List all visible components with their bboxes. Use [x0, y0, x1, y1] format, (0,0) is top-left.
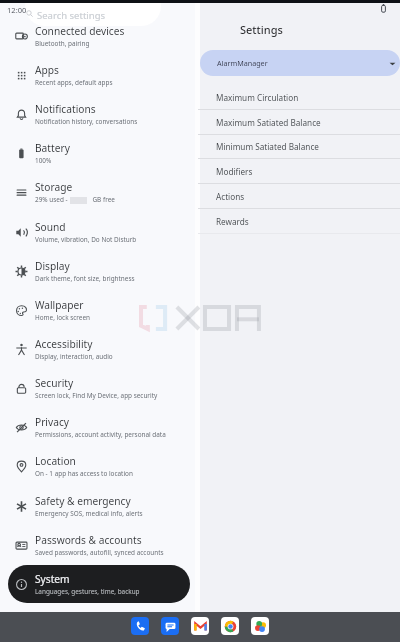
button[interactable]: Display — [8, 252, 190, 290]
staticText: Wallpaper — [35, 298, 84, 312]
button[interactable]: gmail — [191, 617, 209, 635]
staticText: Passwords & accounts — [35, 533, 142, 547]
button[interactable]: Sound — [8, 213, 190, 251]
staticText: Saved passwords, autofill, synced accoun… — [35, 548, 164, 557]
staticText: Battery — [35, 141, 70, 155]
staticText: Storage — [35, 180, 73, 194]
staticText: 29% used - GB free — [35, 195, 115, 204]
button[interactable]: Apps — [8, 56, 190, 94]
button[interactable]: Safety & emergency — [8, 487, 190, 525]
staticText: Sound — [35, 220, 66, 234]
staticText: System — [35, 572, 70, 586]
staticText: Connected devices — [35, 24, 125, 38]
staticText: 100% — [35, 156, 52, 165]
button[interactable]: Search settings — [25, 0, 161, 26]
button[interactable]: Notifications — [8, 95, 190, 133]
button[interactable]: Privacy — [8, 408, 190, 446]
staticText: Display, interaction, audio — [35, 352, 113, 361]
staticText: Apps — [35, 63, 59, 77]
staticText: 12:00 — [7, 5, 27, 15]
staticText: Modifiers — [216, 166, 253, 177]
button[interactable]: chrome — [221, 617, 239, 635]
staticText: Emergency SOS, medical info, alerts — [35, 509, 143, 518]
staticText: On - 1 app has access to location — [35, 469, 133, 478]
staticText: Languages, gestures, time, backup — [35, 587, 140, 596]
staticText: Settings — [240, 22, 283, 37]
button[interactable]: Connected devices — [8, 17, 190, 55]
button[interactable]: photos — [251, 617, 269, 635]
staticText: Screen lock, Find My Device, app securit… — [35, 391, 158, 400]
staticText: Privacy — [35, 415, 69, 429]
staticText: Location — [35, 454, 76, 468]
staticText: AlarmManager — [217, 58, 268, 68]
staticText: Notification history, conversations — [35, 117, 138, 126]
button[interactable]: Security — [8, 369, 190, 407]
button[interactable]: AlarmManager — [200, 50, 400, 76]
staticText: Notifications — [35, 102, 96, 116]
staticText: Volume, vibration, Do Not Disturb — [35, 235, 137, 244]
button[interactable]: Passwords & accounts — [8, 526, 190, 564]
staticText: Dark theme, font size, brightness — [35, 274, 135, 283]
button[interactable]: Minimum Satiated Balance — [198, 134, 400, 159]
button[interactable]: Rewards — [198, 209, 400, 234]
button[interactable]: Battery — [8, 134, 190, 172]
staticText: Home, lock screen — [35, 313, 91, 322]
staticText: Recent apps, default apps — [35, 78, 113, 87]
button[interactable]: Accessibility — [8, 330, 190, 368]
staticText: Permissions, account activity, personal … — [35, 430, 166, 439]
staticText: Security — [35, 376, 74, 390]
button[interactable]: Maximum Satiated Balance — [198, 110, 400, 135]
button[interactable]: phone — [131, 617, 149, 635]
button[interactable]: Storage — [8, 173, 190, 211]
staticText: Accessibility — [35, 337, 93, 351]
staticText: Safety & emergency — [35, 494, 131, 508]
button[interactable]: Modifiers — [198, 159, 400, 184]
button[interactable]: messages — [161, 617, 179, 635]
staticText: Search settings — [37, 9, 106, 22]
staticText: Maximum Circulation — [216, 92, 299, 103]
staticText: Rewards — [216, 216, 249, 227]
staticText: Actions — [216, 191, 245, 202]
staticText: Display — [35, 259, 70, 273]
button[interactable]: System — [8, 565, 190, 603]
staticText: Maximum Satiated Balance — [216, 117, 321, 128]
staticText: Minimum Satiated Balance — [216, 141, 319, 152]
button[interactable]: Maximum Circulation — [198, 85, 400, 110]
staticText: Bluetooth, pairing — [35, 39, 90, 48]
button[interactable]: Actions — [198, 184, 400, 209]
button[interactable]: Wallpaper — [8, 291, 190, 329]
button[interactable]: Location — [8, 447, 190, 485]
